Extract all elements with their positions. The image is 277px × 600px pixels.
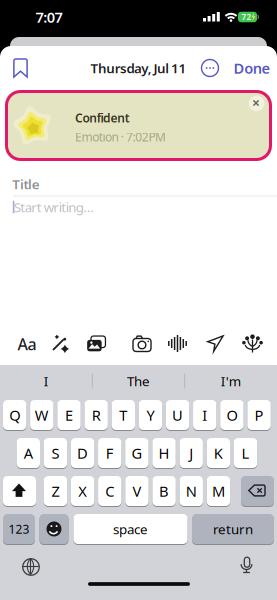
staticText: B bbox=[159, 481, 169, 501]
staticText: E bbox=[65, 405, 73, 425]
staticText: S bbox=[51, 443, 59, 463]
button[interactable]: I bbox=[0, 0, 277, 600]
staticText: 72 bbox=[241, 12, 251, 22]
staticText: U bbox=[172, 405, 183, 425]
staticText: Aa bbox=[17, 333, 36, 355]
staticText: W bbox=[35, 405, 49, 425]
staticText: F bbox=[106, 443, 114, 463]
button[interactable]: B bbox=[0, 0, 277, 600]
button[interactable]: G bbox=[0, 0, 277, 600]
button[interactable]: The bbox=[0, 0, 277, 600]
staticText: Emotion · 7:02PM bbox=[75, 129, 166, 145]
button[interactable]: O bbox=[0, 0, 277, 600]
button[interactable]: More options bbox=[0, 0, 277, 600]
button[interactable]: H bbox=[0, 0, 277, 600]
button[interactable]: X bbox=[0, 0, 277, 600]
staticText: I bbox=[44, 372, 49, 390]
button[interactable]: Y bbox=[0, 0, 277, 600]
button[interactable]: R bbox=[0, 0, 277, 600]
button[interactable]: Z bbox=[0, 0, 277, 600]
staticText: 123 bbox=[8, 521, 29, 537]
button[interactable]: Audio recording bbox=[0, 0, 277, 600]
button[interactable]: Next keyboard bbox=[0, 0, 277, 600]
staticText: T bbox=[119, 405, 127, 425]
staticText: Z bbox=[51, 481, 59, 501]
button[interactable]: J bbox=[0, 0, 277, 600]
button[interactable]: K bbox=[0, 0, 277, 600]
button[interactable]: Location bbox=[0, 0, 277, 600]
button[interactable]: V bbox=[0, 0, 277, 600]
button[interactable]: Done bbox=[0, 0, 277, 600]
staticText: I bbox=[202, 405, 207, 425]
staticText: Q bbox=[9, 405, 20, 425]
button[interactable]: T bbox=[0, 0, 277, 600]
staticText: V bbox=[132, 481, 141, 501]
staticText: Start writing... bbox=[14, 198, 94, 216]
button[interactable]: L bbox=[0, 0, 277, 600]
staticText: D bbox=[77, 443, 88, 463]
button[interactable]: N bbox=[0, 0, 277, 600]
button[interactable]: I bbox=[0, 0, 277, 600]
staticText: Title bbox=[12, 175, 40, 193]
staticText: H bbox=[158, 443, 169, 463]
staticText: J bbox=[189, 443, 193, 463]
button[interactable]: U bbox=[0, 0, 277, 600]
staticText: return bbox=[213, 520, 253, 538]
staticText: G bbox=[131, 443, 142, 463]
staticText: X bbox=[78, 481, 87, 501]
staticText: A bbox=[24, 443, 33, 463]
button[interactable]: Writing tools bbox=[0, 0, 277, 600]
button[interactable]: W bbox=[0, 0, 277, 600]
button[interactable]: Confident bbox=[5, 90, 272, 161]
staticText: L bbox=[241, 443, 249, 463]
button[interactable]: I'm bbox=[0, 0, 277, 600]
button[interactable]: return bbox=[0, 0, 277, 600]
button[interactable]: E bbox=[0, 0, 277, 600]
button[interactable]: space bbox=[0, 0, 277, 600]
button[interactable]: A bbox=[0, 0, 277, 600]
button[interactable]: Bookmark bbox=[0, 0, 277, 600]
staticText: space bbox=[113, 520, 148, 538]
button[interactable]: Dictate bbox=[0, 0, 277, 600]
button[interactable]: C bbox=[0, 0, 277, 600]
staticText: Thursday, Jul 11 bbox=[90, 59, 186, 77]
button[interactable]: Text format bbox=[0, 0, 277, 600]
button[interactable]: P bbox=[0, 0, 277, 600]
staticText: K bbox=[214, 443, 223, 463]
button[interactable]: Photos bbox=[0, 0, 277, 600]
button[interactable]: Q bbox=[0, 0, 277, 600]
staticText: P bbox=[255, 405, 264, 425]
button[interactable]: M bbox=[0, 0, 277, 600]
button[interactable]: F bbox=[0, 0, 277, 600]
staticText: Confident bbox=[75, 110, 130, 126]
button[interactable]: D bbox=[0, 0, 277, 600]
staticText: 7:07 bbox=[35, 7, 62, 27]
staticText: M bbox=[212, 481, 225, 501]
button[interactable]: S bbox=[0, 0, 277, 600]
staticText: O bbox=[226, 405, 237, 425]
staticText: Y bbox=[146, 405, 154, 425]
button[interactable]: Shift bbox=[0, 0, 277, 600]
button[interactable]: Suggestions bbox=[0, 0, 277, 600]
button[interactable]: Delete bbox=[0, 0, 277, 600]
button[interactable]: Emoji bbox=[0, 0, 277, 600]
staticText: R bbox=[92, 405, 101, 425]
staticText: The bbox=[127, 372, 150, 390]
staticText: I'm bbox=[221, 372, 241, 390]
button[interactable]: 123 bbox=[0, 0, 277, 600]
button[interactable]: Remove emotion bbox=[5, 90, 272, 161]
staticText: C bbox=[105, 481, 114, 501]
staticText: Done bbox=[233, 58, 270, 78]
button[interactable]: Camera bbox=[0, 0, 277, 600]
staticText: N bbox=[186, 481, 197, 501]
